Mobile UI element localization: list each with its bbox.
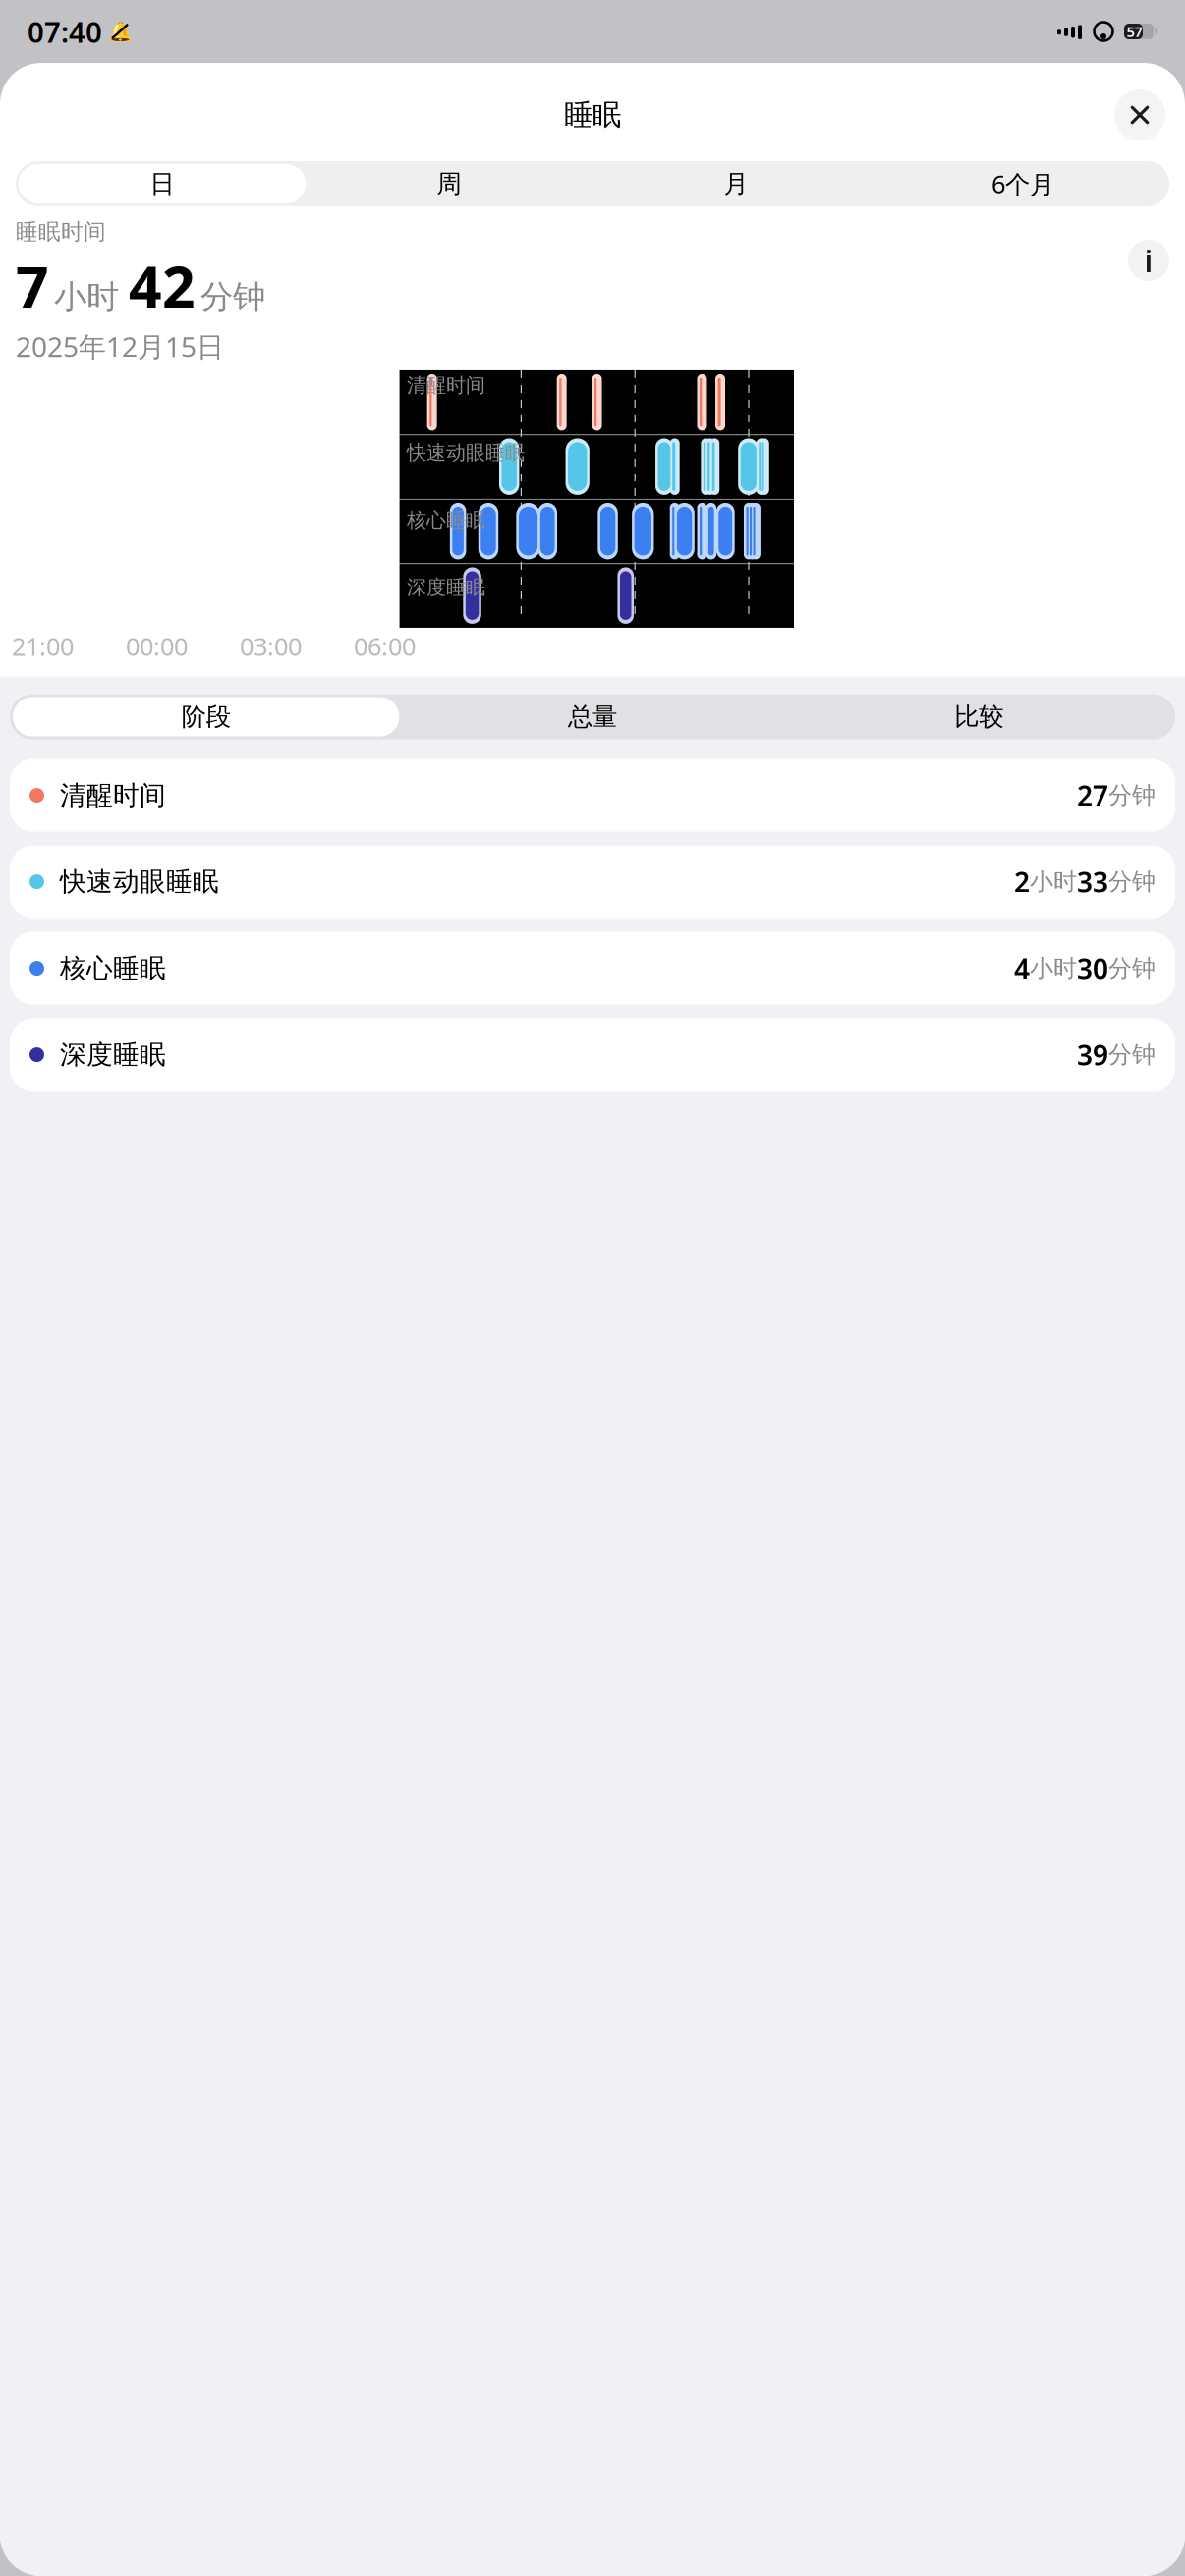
staticText: 6个月: [991, 167, 1054, 200]
staticText: 小时: [1030, 867, 1077, 896]
staticText: 比较: [954, 701, 1004, 732]
staticText: 00:00: [126, 630, 188, 663]
staticText: 快速动眼睡眠: [52, 866, 219, 898]
button[interactable]: 日: [19, 164, 306, 203]
button[interactable]: 信息: [1128, 240, 1169, 281]
staticText: 深度睡眠: [407, 575, 485, 599]
staticText: 核心睡眠: [407, 508, 485, 532]
button[interactable]: 阶段: [13, 697, 399, 736]
staticText: 2: [1014, 864, 1030, 900]
staticText: 7: [16, 247, 49, 324]
staticText: 57: [1127, 22, 1142, 41]
staticText: i: [1144, 240, 1153, 280]
staticText: 07:40: [28, 12, 102, 51]
staticText: 39: [1077, 1036, 1108, 1073]
staticText: 分钟: [1108, 781, 1156, 810]
staticText: 21:00: [12, 630, 74, 663]
staticText: 2025年12月15日: [16, 328, 224, 364]
staticText: 27: [1077, 777, 1108, 814]
button[interactable]: 6个月: [879, 164, 1166, 203]
staticText: 总量: [568, 701, 617, 732]
button[interactable]: 深度睡眠: [10, 1018, 1175, 1091]
staticText: 清醒时间: [407, 373, 485, 397]
staticText: 睡眠: [564, 97, 621, 133]
staticText: 4: [1014, 950, 1030, 987]
button[interactable]: 清醒时间: [10, 759, 1175, 832]
staticText: 小时: [54, 277, 119, 317]
staticText: 快速动眼睡眠: [407, 441, 525, 465]
staticText: 分钟: [200, 277, 265, 317]
staticText: 日: [150, 168, 174, 199]
staticText: 42: [129, 247, 196, 324]
staticText: 分钟: [1108, 954, 1156, 983]
button[interactable]: 关闭: [1114, 89, 1165, 140]
button[interactable]: 核心睡眠: [10, 932, 1175, 1005]
staticText: 30: [1077, 950, 1108, 987]
staticText: 🔔: [108, 20, 132, 43]
button[interactable]: 总量: [399, 697, 786, 736]
button[interactable]: 周: [306, 164, 592, 203]
staticText: 阶段: [181, 701, 231, 732]
staticText: 周: [437, 168, 461, 199]
staticText: 月: [724, 168, 748, 199]
staticText: 33: [1077, 864, 1108, 900]
staticText: 分钟: [1108, 1040, 1156, 1069]
button[interactable]: 快速动眼睡眠: [10, 846, 1175, 918]
staticText: 小时: [1030, 954, 1077, 983]
button[interactable]: 比较: [786, 697, 1172, 736]
staticText: 03:00: [240, 630, 302, 663]
staticText: 06:00: [354, 630, 416, 663]
staticText: 清醒时间: [52, 779, 166, 812]
staticText: 分钟: [1108, 867, 1156, 896]
button[interactable]: 月: [592, 164, 879, 203]
staticText: 深度睡眠: [52, 1039, 166, 1071]
staticText: 核心睡眠: [52, 952, 166, 984]
staticText: 睡眠时间: [16, 218, 106, 245]
